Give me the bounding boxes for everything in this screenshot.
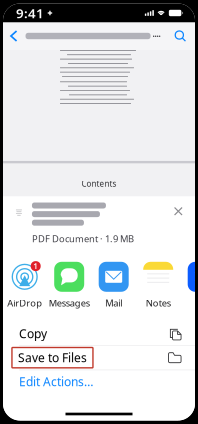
staticText: 9:41: [16, 4, 44, 22]
button[interactable]: Dr: [180, 261, 198, 309]
button[interactable]: Back: [3, 24, 23, 48]
staticText: ····: [153, 31, 161, 41]
staticText: PDF Document · 1.9 MB: [32, 232, 134, 245]
button[interactable]: 1: [2, 261, 47, 309]
staticText: 1: [33, 261, 38, 271]
staticText: AirDrop: [7, 297, 42, 309]
button[interactable]: Edit Actions…: [3, 370, 195, 393]
staticText: Edit Actions…: [19, 374, 93, 390]
button[interactable]: Search: [169, 24, 195, 48]
button[interactable]: Close: [171, 203, 186, 219]
button[interactable]: Notes: [136, 261, 180, 309]
staticText: Mail: [105, 297, 122, 309]
staticText: Messages: [49, 297, 90, 309]
button[interactable]: Save to Files: [3, 346, 195, 370]
staticText: Copy: [19, 326, 47, 342]
staticText: Contents: [81, 178, 116, 189]
staticText: Notes: [146, 297, 171, 309]
staticText: Save to Files: [18, 350, 87, 366]
button[interactable]: Mail: [91, 261, 136, 309]
button[interactable]: Messages: [47, 261, 91, 309]
button[interactable]: Copy: [3, 322, 195, 345]
